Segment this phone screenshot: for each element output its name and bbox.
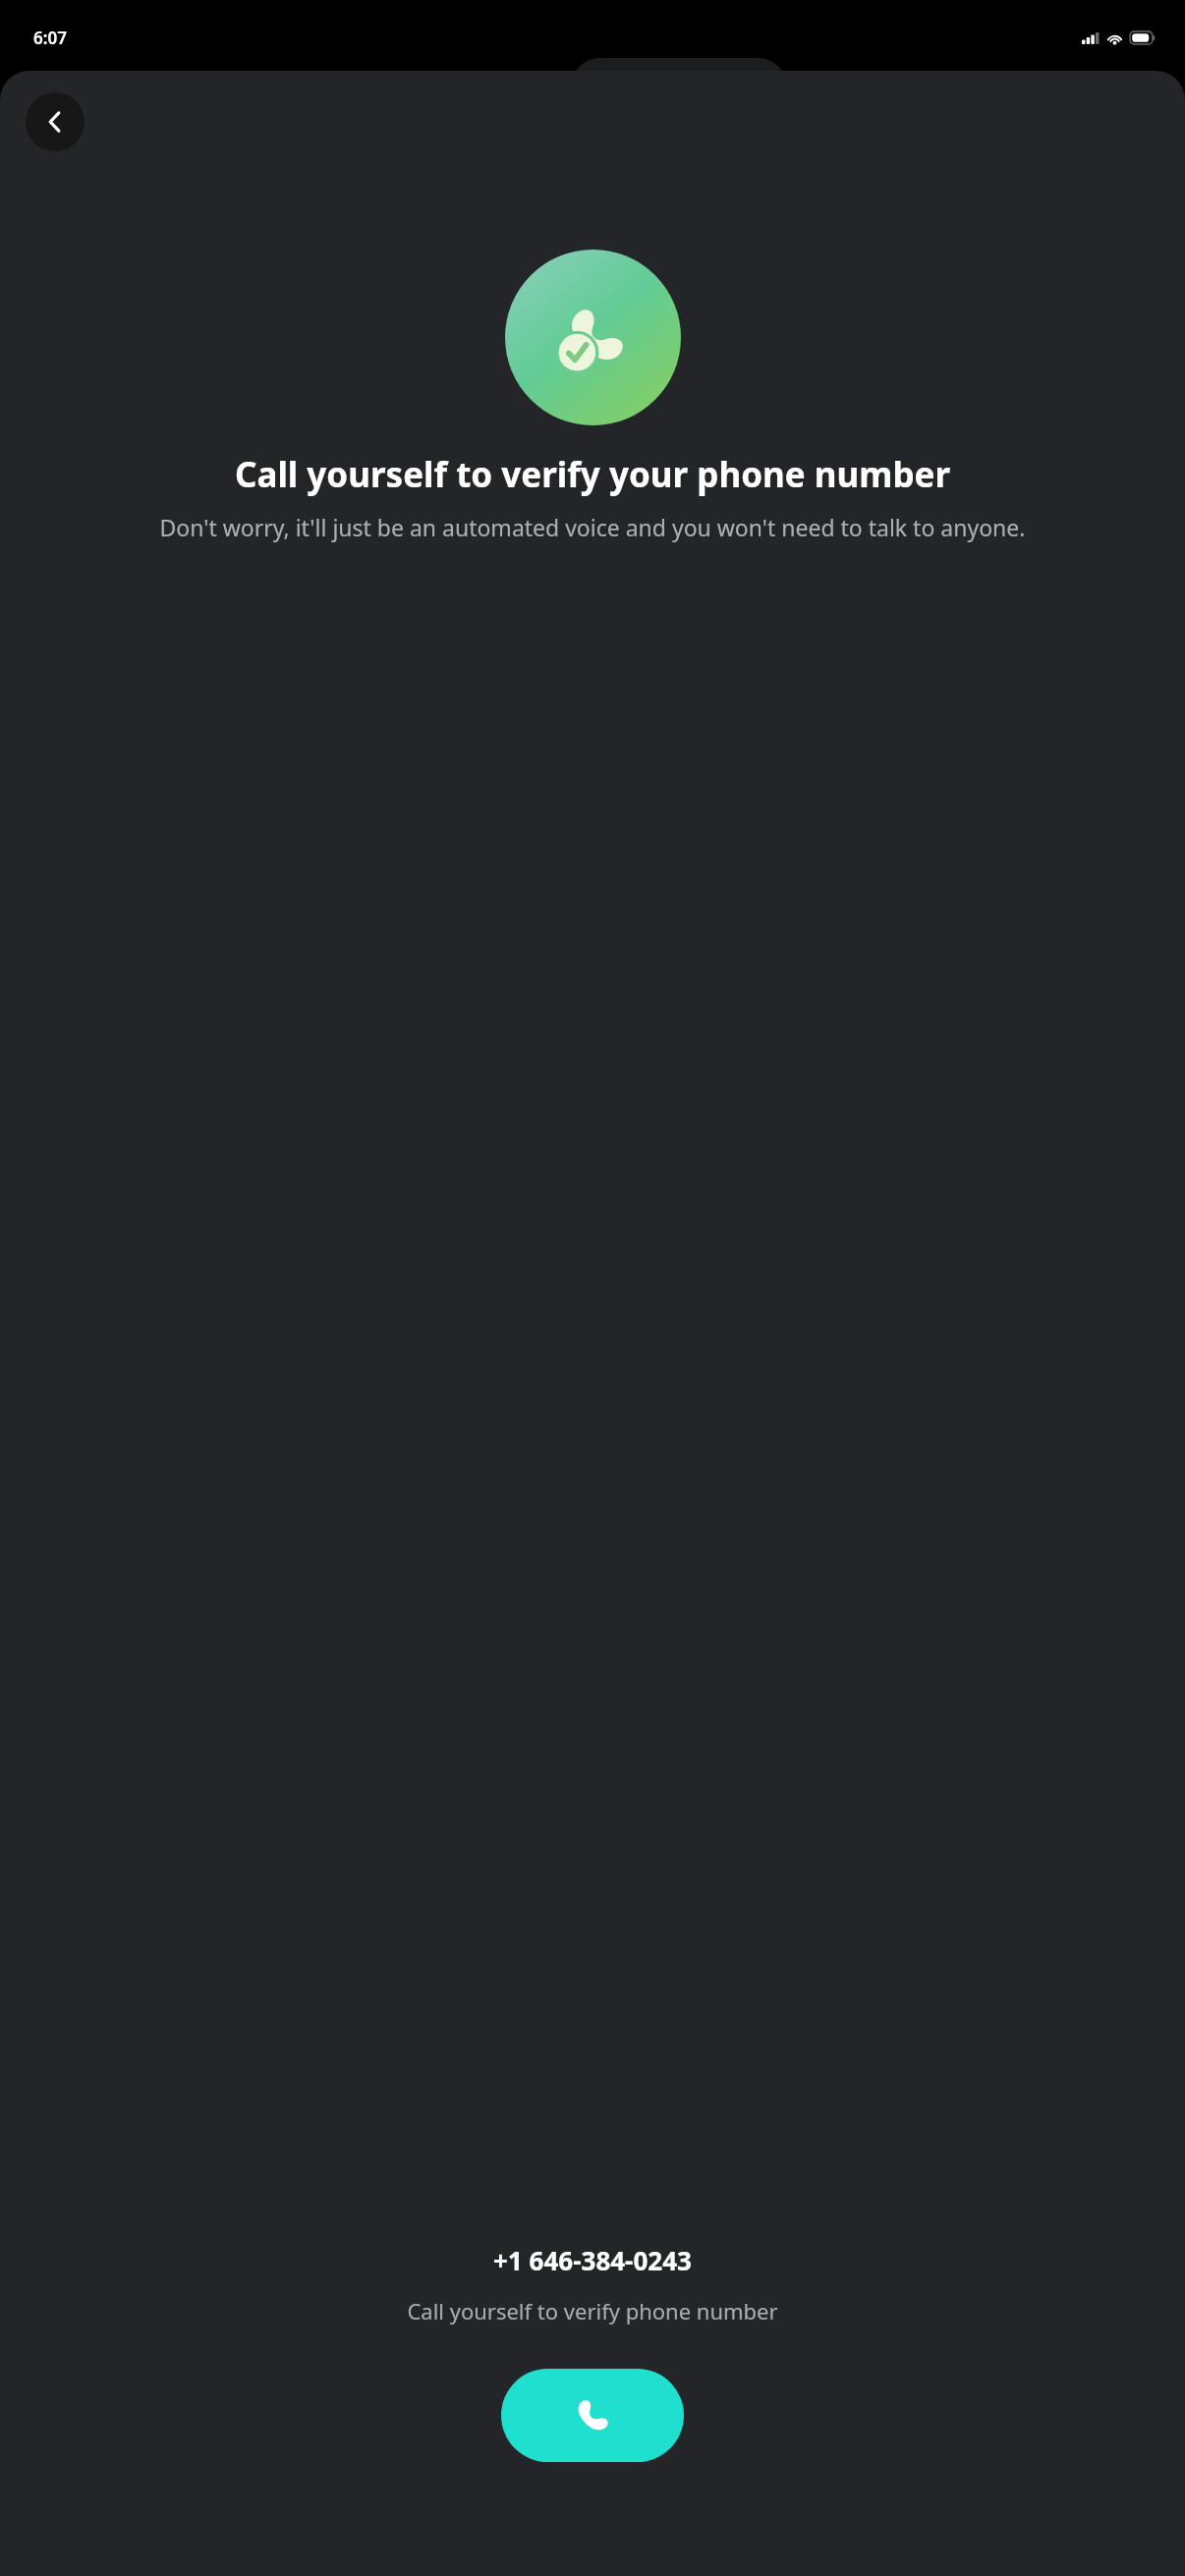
button[interactable]: Back [26,92,85,151]
staticText: Don't worry, it'll just be an automated … [26,512,1159,542]
staticText: Call yourself to verify your phone numbe… [26,451,1159,498]
staticText: +1 646-384-0243 [0,2243,1185,2277]
button[interactable]: Call [501,2369,684,2462]
staticText: Call yourself to verify phone number [0,2296,1185,2325]
staticText: 6:07 [33,27,67,49]
